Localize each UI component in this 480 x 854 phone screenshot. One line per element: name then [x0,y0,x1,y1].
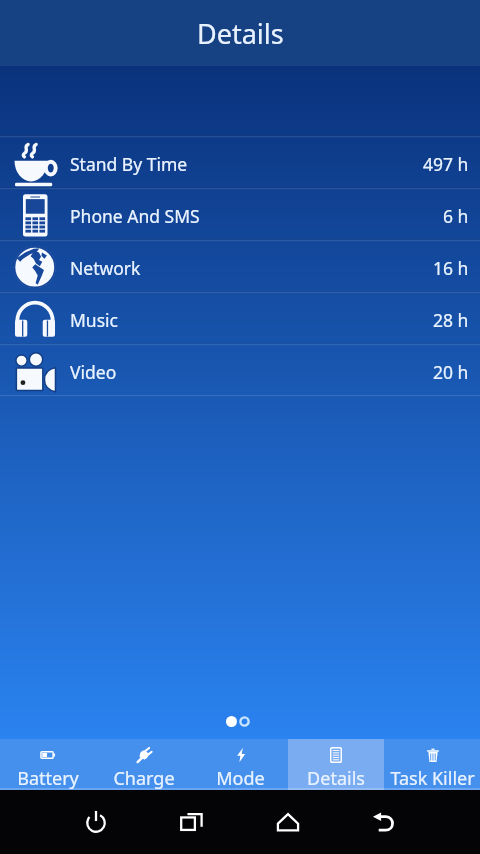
staticText: Music [70,308,118,332]
button[interactable]: Phone And SMS [0,187,480,239]
button[interactable]: Mode [192,739,288,790]
button[interactable]: Power [48,790,144,854]
staticText: Details [197,15,284,52]
staticText: 20 h [433,360,469,384]
staticText: Stand By Time [70,152,188,176]
button[interactable]: Stand By Time [0,135,480,187]
staticText: 28 h [433,308,469,332]
staticText: 497 h [423,152,469,176]
staticText: Details [307,766,365,790]
staticText: Mode [216,766,265,790]
staticText: Task Killer [390,766,475,790]
staticText: 6 h [443,204,469,228]
staticText: Video [70,360,117,384]
button[interactable]: Video [0,343,480,395]
staticText: 16 h [433,256,469,280]
button[interactable]: Back [336,790,432,854]
staticText: Charge [113,766,175,790]
staticText: Phone And SMS [70,204,200,228]
staticText: Network [70,256,141,280]
button[interactable]: Music [0,291,480,343]
button[interactable]: Charge [96,739,192,790]
button[interactable]: Task Killer [384,739,480,790]
staticText: Battery [17,766,79,790]
button[interactable]: Details [288,739,384,790]
button[interactable]: Battery [0,739,96,790]
button[interactable]: Network [0,239,480,291]
button[interactable]: Home [240,790,336,854]
button[interactable]: Recent apps [144,790,240,854]
